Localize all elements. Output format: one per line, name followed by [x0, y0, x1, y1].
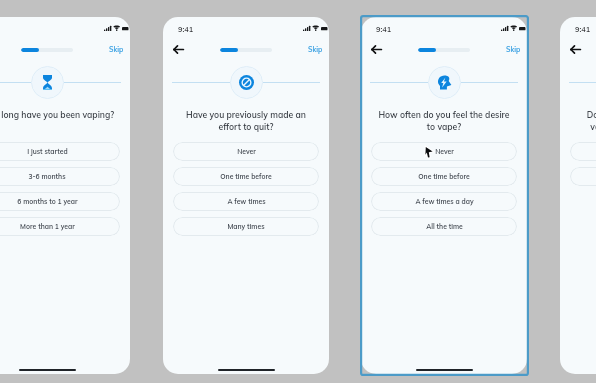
button[interactable]: All the time	[371, 217, 517, 236]
staticText: Skip	[308, 45, 323, 54]
button[interactable]: Back	[570, 45, 581, 54]
button[interactable]: A few times a day	[371, 192, 517, 211]
staticText: 9:41	[376, 25, 392, 34]
staticText: More than 1 year	[20, 222, 75, 231]
button[interactable]: No, not yet	[570, 167, 596, 186]
staticText: A few times	[227, 197, 266, 206]
button[interactable]: 6 months to 1 year	[0, 192, 120, 211]
button[interactable]: I just started	[0, 142, 120, 161]
button[interactable]: Skip	[506, 45, 521, 54]
button[interactable]: A few times	[173, 192, 319, 211]
button[interactable]: Back	[173, 45, 184, 54]
button[interactable]: One time before	[371, 167, 517, 186]
staticText: Skip	[506, 45, 521, 54]
staticText: 9:41	[575, 25, 591, 34]
staticText: How often do you feel the desire to vape…	[376, 109, 512, 133]
button[interactable]: Many times	[173, 217, 319, 236]
staticText: How long have you been vaping?	[0, 109, 115, 120]
staticText: Skip	[109, 45, 124, 54]
staticText: Never	[237, 147, 256, 156]
button[interactable]: Never	[173, 142, 319, 161]
staticText: I just started	[27, 147, 68, 156]
staticText: A few times a day	[415, 197, 474, 206]
button[interactable]: Skip	[308, 45, 323, 54]
button[interactable]: Never	[371, 142, 517, 161]
staticText: One time before	[220, 172, 272, 181]
button[interactable]: More than 1 year	[0, 217, 120, 236]
button[interactable]: Skip	[109, 45, 124, 54]
staticText: 3-6 months	[28, 172, 66, 181]
button[interactable]: 3-6 months	[0, 167, 120, 186]
staticText: Do you think you could stop vaping in th…	[575, 109, 596, 133]
button[interactable]: One time before	[173, 167, 319, 186]
staticText: 9:41	[178, 25, 194, 34]
staticText: Never	[435, 147, 454, 156]
staticText: Have you previously made an effort to qu…	[178, 109, 314, 133]
staticText: One time before	[418, 172, 470, 181]
staticText: 6 months to 1 year	[17, 197, 78, 206]
button[interactable]: Yes, I think so	[570, 142, 596, 161]
staticText: Many times	[227, 222, 265, 231]
staticText: All the time	[426, 222, 463, 231]
button[interactable]: Back	[371, 45, 382, 54]
